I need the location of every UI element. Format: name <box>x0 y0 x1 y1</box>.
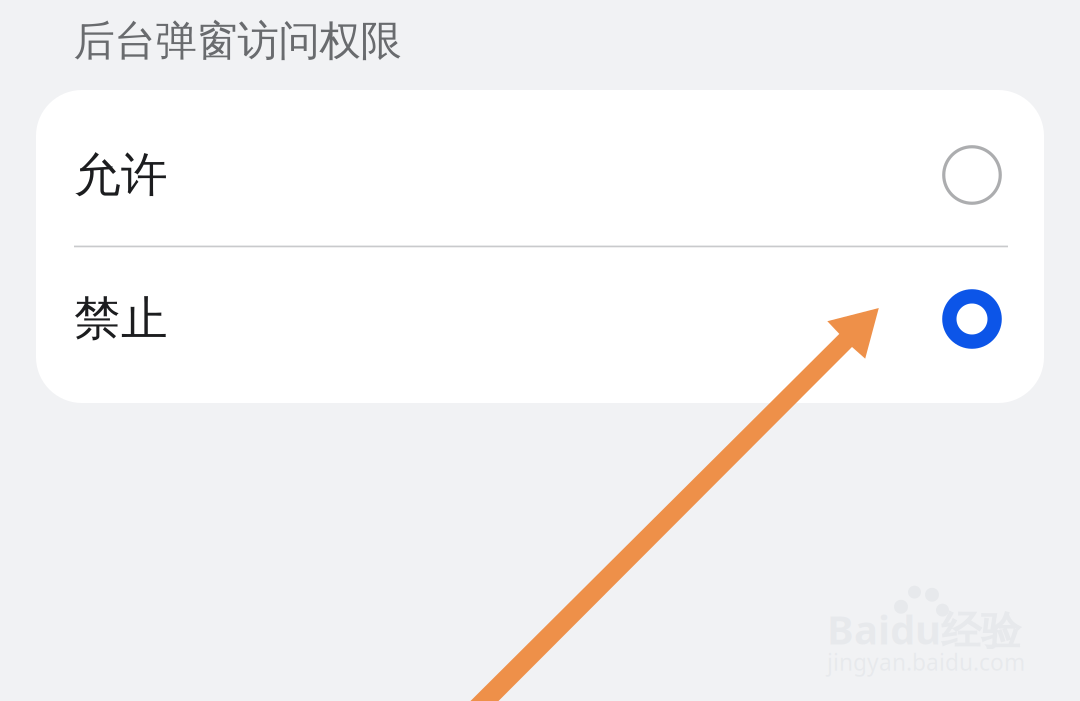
staticText: jingyan.baidu.com <box>827 647 1025 677</box>
button[interactable]: 允许 <box>36 90 1044 246</box>
staticText: 禁止 <box>74 290 168 348</box>
staticText: 允许 <box>74 146 168 204</box>
button[interactable]: 禁止 <box>36 246 1044 403</box>
staticText: Baidu经验 <box>827 602 1021 656</box>
staticText: 后台弹窗访问权限 <box>73 16 401 66</box>
